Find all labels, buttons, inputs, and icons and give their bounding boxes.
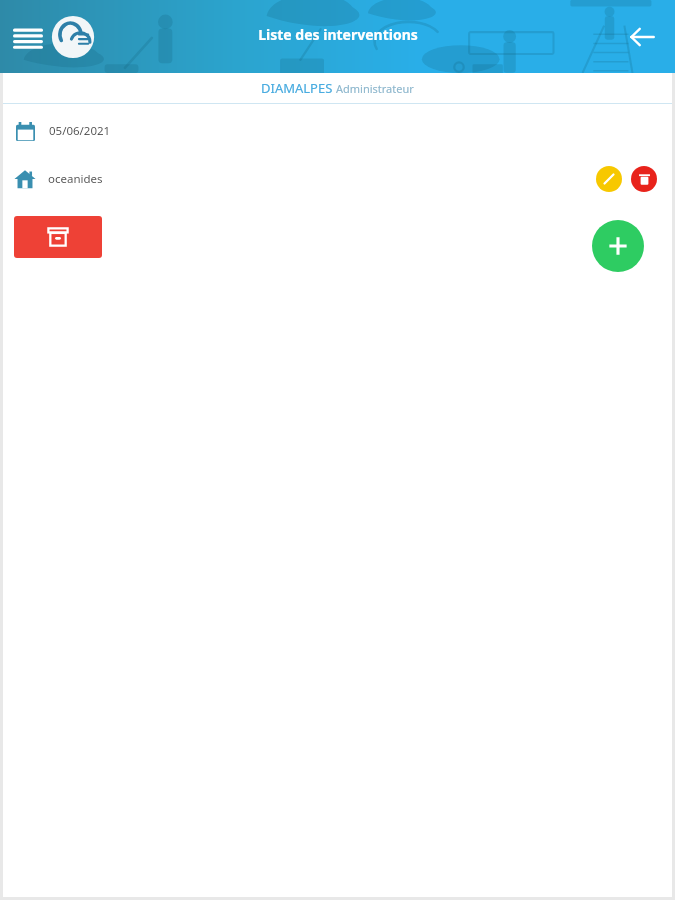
- button[interactable]: 05/06/2021: [3, 118, 672, 144]
- button[interactable]: Menu: [6, 15, 50, 59]
- staticText: 05/06/2021: [49, 123, 111, 139]
- button[interactable]: Delete: [631, 166, 657, 192]
- button[interactable]: Back: [619, 14, 665, 60]
- staticText: DIAMALPES: [261, 79, 336, 97]
- button[interactable]: Edit: [596, 166, 622, 192]
- button[interactable]: Logo: [47, 11, 99, 63]
- button[interactable]: oceanides: [48, 171, 103, 187]
- button[interactable]: Add: [592, 220, 644, 272]
- staticText: Liste des interventions: [258, 25, 418, 44]
- staticText: Administrateur: [336, 81, 414, 96]
- button[interactable]: Archive: [14, 216, 102, 258]
